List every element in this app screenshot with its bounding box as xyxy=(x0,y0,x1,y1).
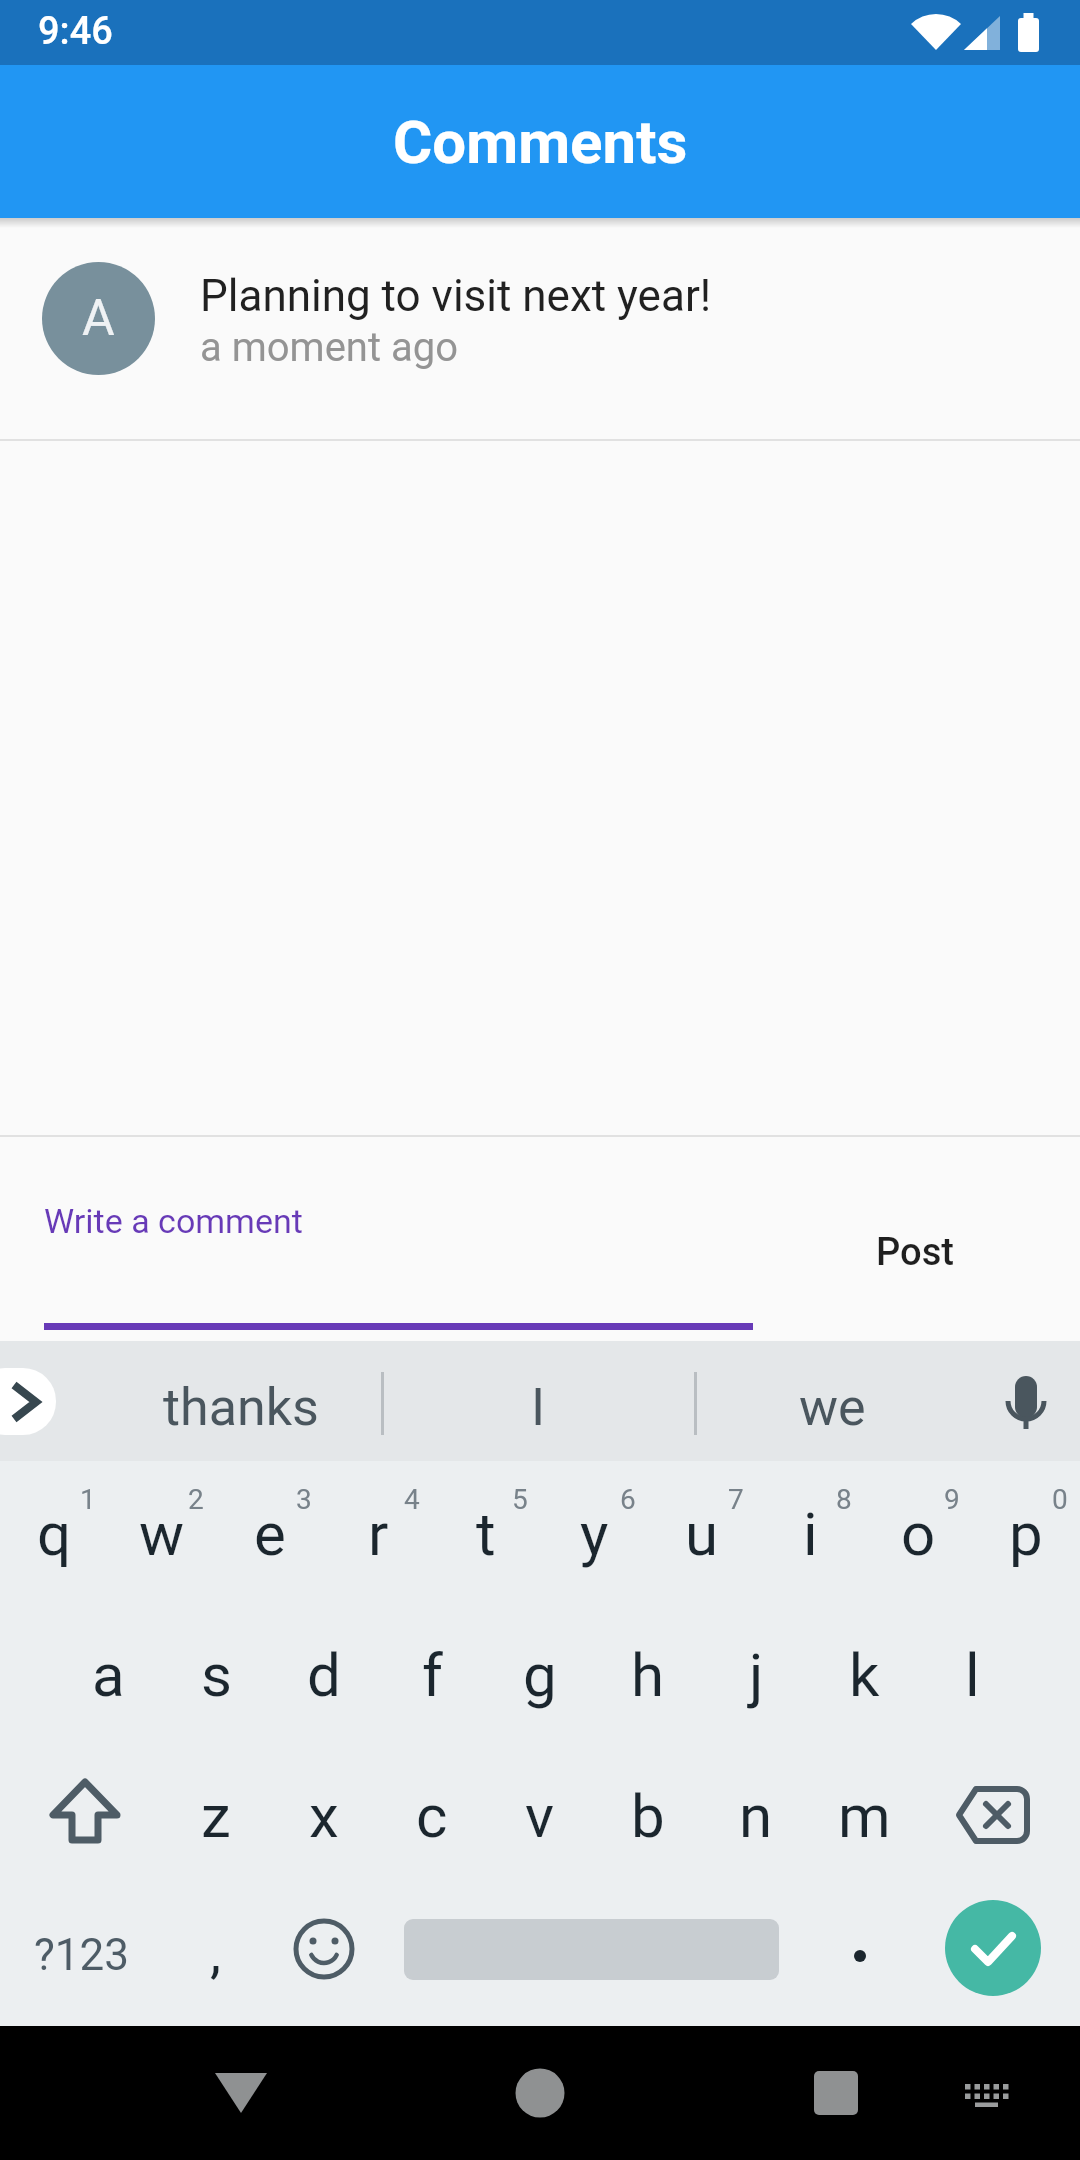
staticText: 1 xyxy=(80,1483,96,1516)
button[interactable]: y xyxy=(540,1461,648,1602)
staticText: h xyxy=(631,1640,665,1710)
staticText: we xyxy=(799,1377,866,1438)
staticText: d xyxy=(307,1640,341,1710)
button[interactable]: A xyxy=(0,218,1080,439)
staticText: o xyxy=(901,1499,936,1569)
staticText: Write a comment xyxy=(44,1201,303,1241)
staticText: k xyxy=(849,1640,880,1710)
button[interactable] xyxy=(0,1368,56,1435)
button[interactable]: x xyxy=(270,1743,378,1884)
button[interactable]: k xyxy=(810,1602,918,1743)
button[interactable]: j xyxy=(702,1602,810,1743)
button[interactable] xyxy=(945,1900,1041,1996)
button[interactable] xyxy=(486,2039,594,2147)
staticText: i xyxy=(803,1499,818,1569)
button[interactable]: , xyxy=(162,1884,270,2026)
staticText: I xyxy=(531,1377,546,1438)
button[interactable] xyxy=(270,1884,378,2026)
staticText: s xyxy=(201,1640,232,1710)
button[interactable]: m xyxy=(810,1743,918,1884)
button[interactable] xyxy=(810,1884,918,2026)
button[interactable]: we xyxy=(697,1341,967,1461)
staticText: ?123 xyxy=(34,1929,129,1981)
staticText: A xyxy=(82,289,115,348)
staticText: f xyxy=(422,1640,443,1710)
staticText: j xyxy=(749,1640,764,1710)
staticText: w xyxy=(139,1499,185,1569)
staticText: g xyxy=(523,1640,557,1710)
staticText: 2 xyxy=(188,1483,204,1516)
staticText: 7 xyxy=(728,1483,744,1516)
button[interactable]: b xyxy=(594,1743,702,1884)
staticText: n xyxy=(739,1781,773,1851)
staticText: , xyxy=(210,1920,222,1986)
button[interactable]: thanks xyxy=(100,1341,381,1461)
staticText: r xyxy=(368,1499,389,1569)
staticText: 6 xyxy=(620,1483,636,1516)
button[interactable]: w xyxy=(108,1461,216,1602)
button[interactable]: s xyxy=(162,1602,270,1743)
staticText: 0 xyxy=(1052,1483,1068,1516)
staticText: z xyxy=(201,1781,231,1851)
button[interactable]: e xyxy=(216,1461,324,1602)
button[interactable]: f xyxy=(378,1602,486,1743)
button[interactable] xyxy=(918,1743,1080,1884)
button[interactable]: z xyxy=(162,1743,270,1884)
staticText: 3 xyxy=(296,1483,312,1516)
button[interactable]: r xyxy=(324,1461,432,1602)
button[interactable]: l xyxy=(918,1602,1026,1743)
button[interactable]: ?123 xyxy=(0,1884,162,2026)
staticText: e xyxy=(254,1499,286,1569)
button[interactable]: q xyxy=(0,1461,108,1602)
staticText: thanks xyxy=(163,1377,319,1438)
staticText: a xyxy=(92,1640,125,1710)
staticText: v xyxy=(525,1781,555,1851)
button[interactable]: u xyxy=(648,1461,756,1602)
staticText: Planning to visit next year! xyxy=(200,270,712,322)
button[interactable] xyxy=(782,2039,890,2147)
staticText: y xyxy=(580,1499,609,1569)
button[interactable]: h xyxy=(594,1602,702,1743)
staticText: 9 xyxy=(944,1483,960,1516)
button[interactable] xyxy=(187,2039,295,2147)
button[interactable]: i xyxy=(756,1461,864,1602)
button[interactable]: t xyxy=(432,1461,540,1602)
staticText: q xyxy=(37,1499,72,1569)
staticText: b xyxy=(631,1781,665,1851)
staticText: p xyxy=(1009,1499,1043,1569)
button[interactable] xyxy=(932,2039,1040,2147)
button[interactable]: g xyxy=(486,1602,594,1743)
staticText: 4 xyxy=(404,1483,420,1516)
button[interactable]: I xyxy=(384,1341,692,1461)
staticText: m xyxy=(838,1781,891,1851)
staticText: x xyxy=(309,1781,339,1851)
button[interactable]: v xyxy=(486,1743,594,1884)
staticText: a moment ago xyxy=(200,324,458,371)
staticText: t xyxy=(476,1499,496,1569)
staticText: Post xyxy=(876,1230,954,1275)
button[interactable] xyxy=(0,1177,800,1297)
button[interactable] xyxy=(0,1743,162,1884)
staticText: 9:46 xyxy=(38,9,113,54)
staticText: l xyxy=(965,1640,980,1710)
button[interactable]: c xyxy=(378,1743,486,1884)
staticText: u xyxy=(685,1499,719,1569)
button[interactable]: p xyxy=(972,1461,1080,1602)
button[interactable]: Post xyxy=(830,1197,1000,1307)
staticText: c xyxy=(416,1781,448,1851)
button[interactable]: n xyxy=(702,1743,810,1884)
button[interactable]: d xyxy=(270,1602,378,1743)
staticText: Comments xyxy=(393,107,688,177)
button[interactable]: a xyxy=(54,1602,162,1743)
button[interactable]: o xyxy=(864,1461,972,1602)
staticText: 5 xyxy=(512,1483,528,1516)
staticText: 8 xyxy=(836,1483,852,1516)
